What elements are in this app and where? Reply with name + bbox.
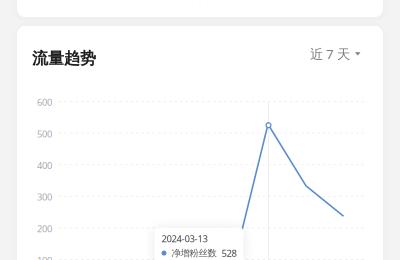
staticText: 净增粉丝数 (171, 247, 216, 259)
staticText: 300 (37, 191, 52, 203)
staticText: 500 (37, 128, 52, 140)
staticText: 100 (37, 254, 52, 260)
button[interactable]: 近 7 天 (310, 45, 360, 63)
staticText: 近 7 天 (310, 45, 350, 63)
staticText: 400 (37, 159, 52, 172)
staticText: 200 (37, 222, 52, 235)
staticText: 2024-03-13 (161, 232, 207, 245)
staticText: 600 (37, 96, 52, 108)
staticText: 528 (221, 247, 236, 259)
staticText: 流量趋势 (32, 48, 96, 68)
